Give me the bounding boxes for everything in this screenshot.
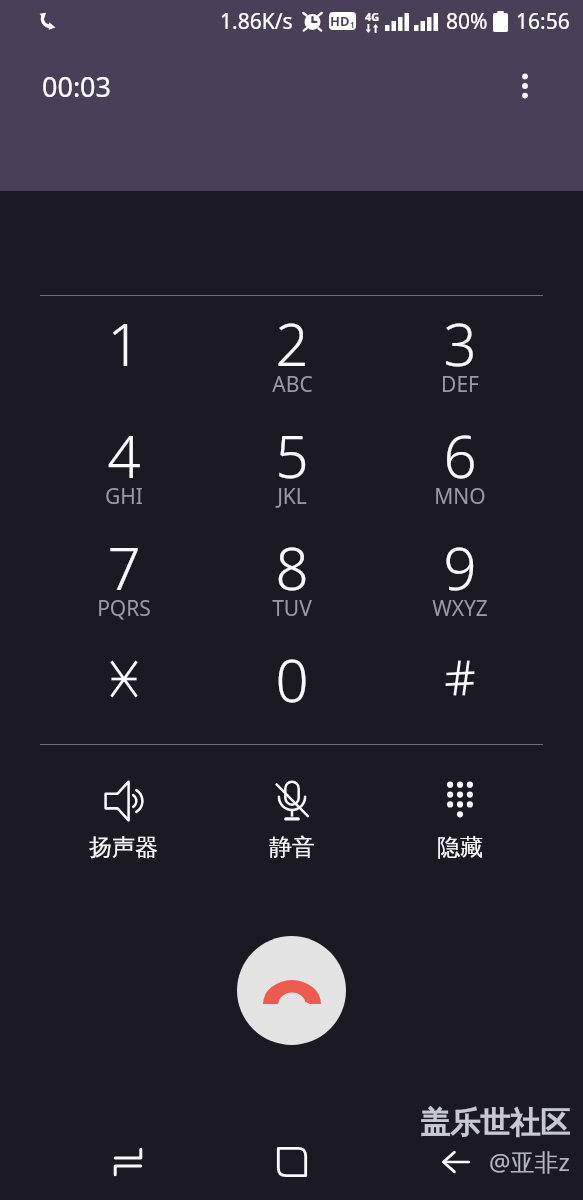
staticText: 16:56 xyxy=(516,7,570,36)
staticText: 6 xyxy=(443,416,477,495)
button[interactable] xyxy=(376,632,544,744)
staticText: 1 xyxy=(350,19,355,30)
staticText: 2 xyxy=(275,304,309,383)
staticText: 隐藏 xyxy=(437,833,483,862)
staticText: 扬声器 xyxy=(89,833,158,862)
button[interactable]: Home xyxy=(210,1123,374,1200)
button[interactable]: More options xyxy=(497,58,553,114)
button[interactable]: 静音 xyxy=(208,745,376,829)
button[interactable]: 0 xyxy=(208,632,376,744)
button[interactable]: 2 xyxy=(208,296,376,408)
staticText: 0 xyxy=(275,640,309,719)
button[interactable]: 1 xyxy=(39,296,208,408)
staticText: 4G xyxy=(365,9,380,24)
staticText: 8 xyxy=(275,528,309,607)
staticText: GHI xyxy=(105,482,143,511)
button[interactable]: 8 xyxy=(208,520,376,632)
staticText: @亚非z xyxy=(489,1145,570,1178)
staticText: 00:03 xyxy=(42,68,112,105)
button[interactable]: 5 xyxy=(208,408,376,520)
button[interactable]: 4 xyxy=(39,408,208,520)
staticText: MNO xyxy=(434,482,486,511)
staticText: 4 xyxy=(107,416,141,495)
staticText: ABC xyxy=(272,370,313,399)
button[interactable]: 6 xyxy=(376,408,544,520)
staticText: 盖乐世社区 xyxy=(420,1104,570,1142)
button[interactable]: 9 xyxy=(376,520,544,632)
staticText: 9 xyxy=(443,528,477,607)
staticText: 静音 xyxy=(269,833,315,862)
button[interactable]: Back xyxy=(374,1123,538,1200)
button[interactable]: Recent apps xyxy=(45,1123,210,1200)
staticText: HD xyxy=(330,12,350,30)
button[interactable]: 扬声器 xyxy=(39,745,208,829)
button[interactable]: 隐藏 xyxy=(376,745,544,829)
staticText: 3 xyxy=(443,304,477,383)
button[interactable]: End call xyxy=(237,936,346,1045)
button[interactable]: 7 xyxy=(39,520,208,632)
button[interactable]: 3 xyxy=(376,296,544,408)
staticText: 80% xyxy=(446,7,488,36)
staticText: DEF xyxy=(441,370,479,399)
staticText: 5 xyxy=(275,416,309,495)
staticText: JKL xyxy=(277,482,307,511)
staticText: WXYZ xyxy=(432,594,488,623)
staticText: 1 xyxy=(107,304,141,383)
staticText: TUV xyxy=(272,594,312,623)
staticText: 7 xyxy=(107,528,141,607)
staticText: 1.86K/s xyxy=(220,7,293,36)
staticText: PQRS xyxy=(97,594,151,623)
button[interactable] xyxy=(39,632,208,744)
